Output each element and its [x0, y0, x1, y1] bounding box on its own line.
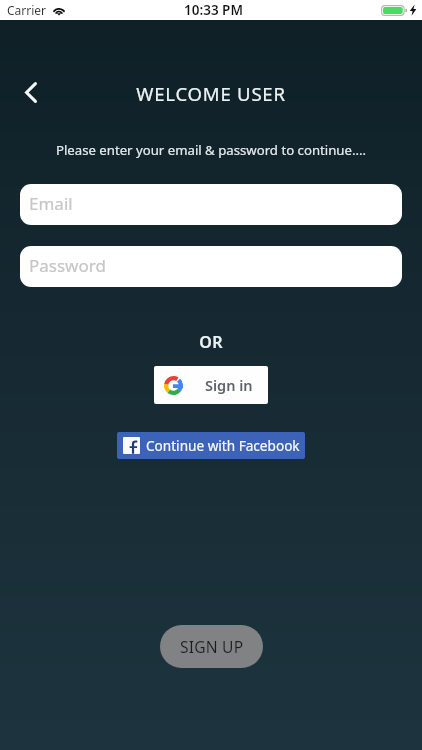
staticText: WELCOME USER — [0, 81, 422, 106]
button[interactable]: SIGN UP — [160, 625, 263, 668]
button[interactable]: Sign in — [154, 366, 268, 404]
staticText: Continue with Facebook — [146, 436, 300, 455]
staticText: Please enter your email & password to co… — [0, 141, 422, 159]
staticText: 10:33 PM — [184, 1, 243, 19]
staticText: Carrier — [7, 2, 47, 18]
staticText: OR — [0, 331, 422, 353]
staticText: SIGN UP — [180, 636, 244, 657]
button[interactable]: Password — [20, 246, 402, 287]
button[interactable]: Continue with Facebook — [117, 432, 305, 459]
staticText: Password — [29, 254, 106, 277]
button[interactable]: Email — [20, 184, 402, 225]
staticText: Email — [29, 192, 73, 215]
staticText: Sign in — [205, 375, 253, 395]
button[interactable]: Back — [12, 73, 50, 111]
